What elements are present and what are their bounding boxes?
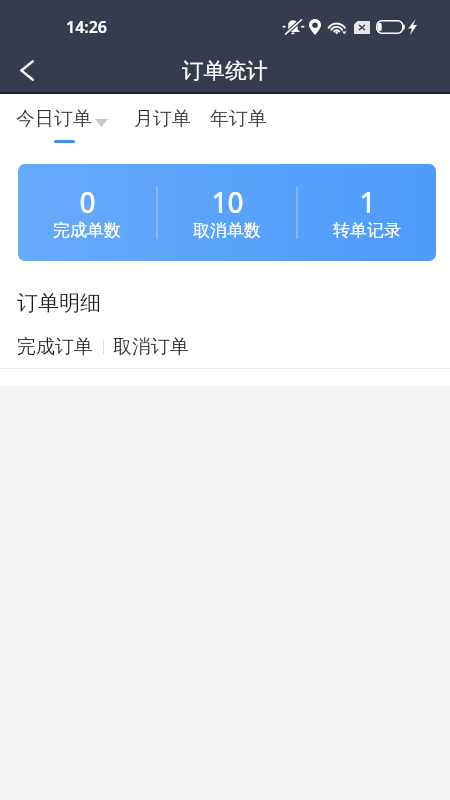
button[interactable]: 年订单	[202, 102, 276, 136]
staticText: 今日订单	[16, 107, 92, 131]
button[interactable]: Back	[5, 48, 49, 92]
button[interactable]: 0	[18, 164, 156, 261]
staticText: 取消订单	[113, 335, 189, 359]
staticText: 月订单	[134, 107, 191, 131]
button[interactable]: 1	[298, 164, 436, 261]
staticText: 转单记录	[333, 220, 401, 241]
staticText: 14:26	[66, 16, 108, 38]
button[interactable]: 今日订单	[10, 102, 112, 144]
staticText: 完成单数	[53, 220, 121, 241]
staticText: 订单明细	[17, 290, 101, 316]
staticText: 年订单	[210, 107, 267, 131]
staticText: 订单统计	[182, 57, 268, 84]
staticText: 0	[79, 183, 96, 221]
button[interactable]: 取消订单	[105, 327, 197, 367]
staticText: 取消单数	[193, 220, 261, 241]
button[interactable]: 完成订单	[9, 327, 101, 367]
staticText: 10	[211, 183, 244, 221]
staticText: 完成订单	[17, 335, 93, 359]
button[interactable]: 10	[158, 164, 296, 261]
button[interactable]: 月订单	[126, 102, 200, 136]
staticText: 1	[359, 183, 376, 221]
